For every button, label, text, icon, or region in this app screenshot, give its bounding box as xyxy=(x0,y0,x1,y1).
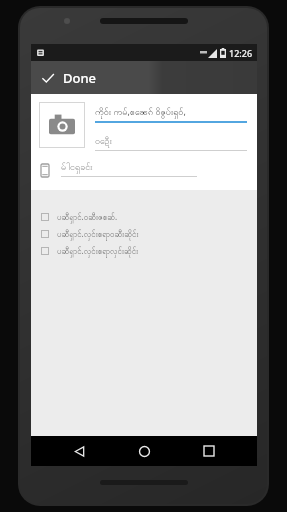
button[interactable]: Home xyxy=(127,436,161,466)
staticText: ကိုဝ်း ကမ်,ဧၼေၵ် ဝိဇွပ်းရှဝ်, xyxy=(95,105,186,119)
button[interactable]: ပဆီရှာင်.ဝဆီးဇဧဆ်. xyxy=(31,208,257,225)
staticText: ဝဍေီး xyxy=(95,135,112,148)
staticText: Done xyxy=(63,69,97,87)
staticText: ပဆီရှာင်.ဝဆီးဇဧဆ်. xyxy=(57,211,118,223)
button[interactable]: Done xyxy=(31,61,109,94)
staticText: မ်ါငရှခင်း xyxy=(61,161,93,174)
staticText: ပဆီရှာင်.လှင်းဧရာဝဆီးဆိုင်း xyxy=(57,228,139,240)
button[interactable]: Add photo xyxy=(39,102,85,148)
staticText: ပဆီရှာင်.လှင်းဧရာလှင်းဆိုင်း xyxy=(57,245,139,257)
button[interactable]: Recent apps xyxy=(192,436,226,466)
button[interactable]: Back xyxy=(62,436,96,466)
button[interactable]: ပဆီရှာင်.လှင်းဧရာလှင်းဆိုင်း xyxy=(31,242,257,259)
staticText: 12:26 xyxy=(229,47,253,59)
button[interactable]: ပဆီရှာင်.လှင်းဧရာဝဆီးဆိုင်း xyxy=(31,225,257,242)
